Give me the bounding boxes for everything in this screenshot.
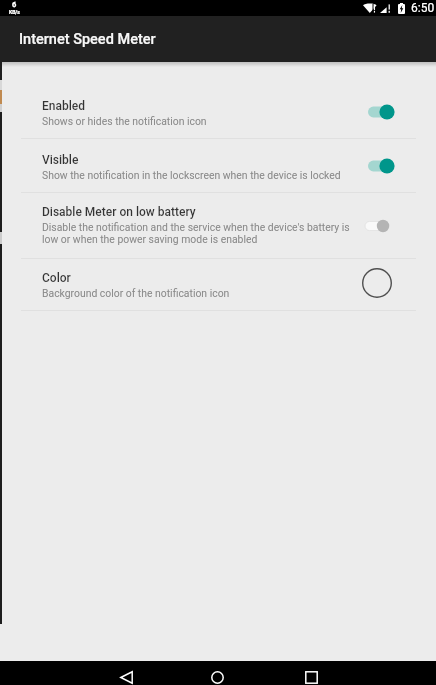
staticText: Disable the notification and the service… (42, 221, 354, 246)
button[interactable]: Color (0, 259, 436, 310)
button[interactable]: Recents (288, 670, 334, 685)
staticText: Visible (42, 153, 79, 167)
staticText: Shows or hides the notification icon (42, 115, 207, 127)
button[interactable]: Toggle (364, 209, 398, 243)
staticText: Enabled (42, 99, 86, 113)
button[interactable]: Visible (0, 139, 436, 192)
button[interactable]: Enabled (0, 85, 436, 138)
button[interactable]: Pick color (364, 268, 398, 302)
staticText: 6:50 (411, 1, 435, 15)
button[interactable]: Disable Meter on low battery (0, 193, 436, 258)
staticText: Internet Speed Meter (19, 31, 156, 48)
staticText: Background color of the notification ico… (42, 287, 230, 299)
staticText: Color (42, 271, 71, 285)
button[interactable]: Toggle (364, 95, 398, 129)
button[interactable]: Toggle (364, 149, 398, 183)
staticText: 6 (12, 0, 17, 9)
staticText: KB/s (9, 9, 20, 15)
button[interactable]: Home (194, 670, 240, 685)
staticText: Show the notification in the lockscreen … (42, 169, 341, 181)
button[interactable]: Back (103, 670, 149, 685)
staticText: Disable Meter on low battery (42, 205, 196, 219)
